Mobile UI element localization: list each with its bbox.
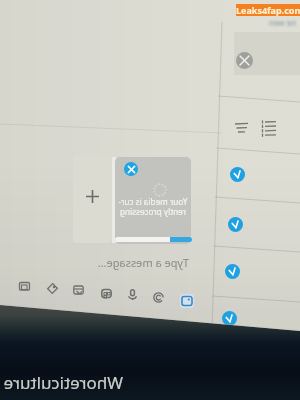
button[interactable]: Gallery (180, 294, 194, 308)
button[interactable]: Leaks4fap.com (236, 4, 300, 16)
button[interactable]: Camera (18, 280, 31, 293)
button[interactable]: Photo (100, 287, 113, 300)
staticText: ne wen (268, 17, 296, 28)
button[interactable]: Search (152, 291, 165, 304)
button[interactable]: Download (228, 217, 243, 232)
button[interactable]: Download (222, 311, 237, 326)
staticText: Whoreticulture (3, 371, 123, 394)
button[interactable]: Your media is cur- rently processing (115, 157, 191, 244)
staticText: Type a message… (97, 255, 189, 270)
button[interactable]: Download (225, 264, 240, 279)
staticText: Your media is cur- rently processing (117, 196, 189, 218)
button[interactable]: Voice message (126, 288, 139, 301)
button[interactable]: Sticker (46, 282, 59, 295)
button[interactable]: Close (236, 52, 253, 69)
staticText: Leaks4fap.com (236, 4, 300, 16)
button[interactable]: Calendar (72, 283, 85, 296)
button[interactable]: Cancel upload (124, 162, 138, 176)
button[interactable]: Download (230, 167, 245, 182)
button[interactable]: Add media (73, 155, 112, 243)
